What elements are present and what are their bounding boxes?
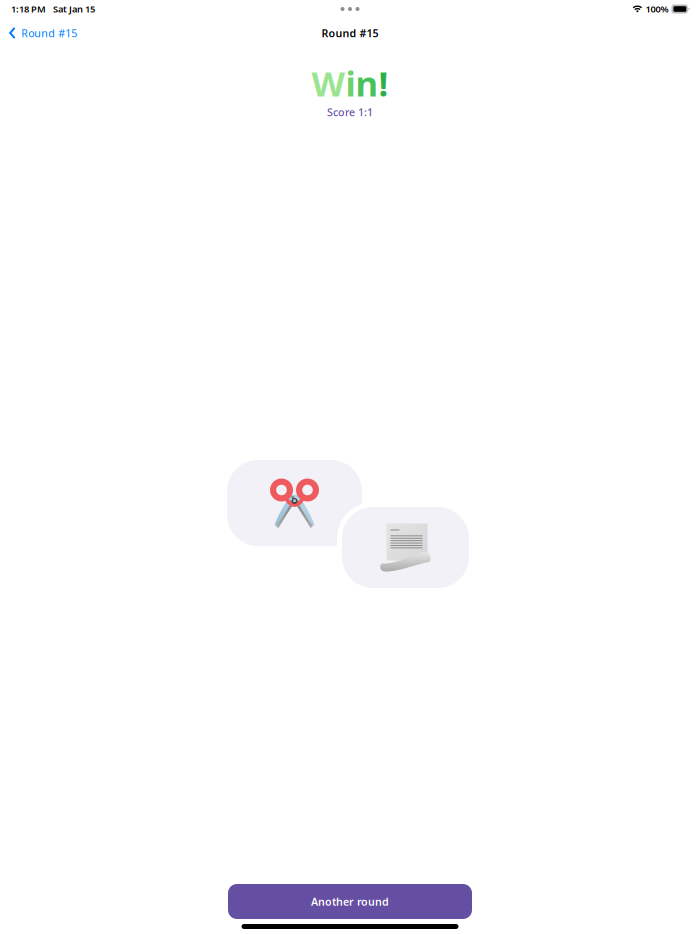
staticText: Score 1:1 <box>327 105 373 119</box>
staticText: 1:18 PM <box>11 3 46 15</box>
staticText: Round #15 <box>321 26 378 40</box>
staticText: i <box>345 60 355 106</box>
staticText: Another round <box>311 894 389 909</box>
staticText: ! <box>378 60 388 106</box>
staticText: Round #15 <box>21 26 77 40</box>
staticText: n <box>355 60 378 106</box>
button[interactable]: Round #15 <box>0 20 85 46</box>
staticText: Sat Jan 15 <box>53 3 95 15</box>
staticText: W <box>311 60 345 106</box>
staticText: 100% <box>645 3 668 15</box>
button[interactable]: Another round <box>228 884 472 919</box>
